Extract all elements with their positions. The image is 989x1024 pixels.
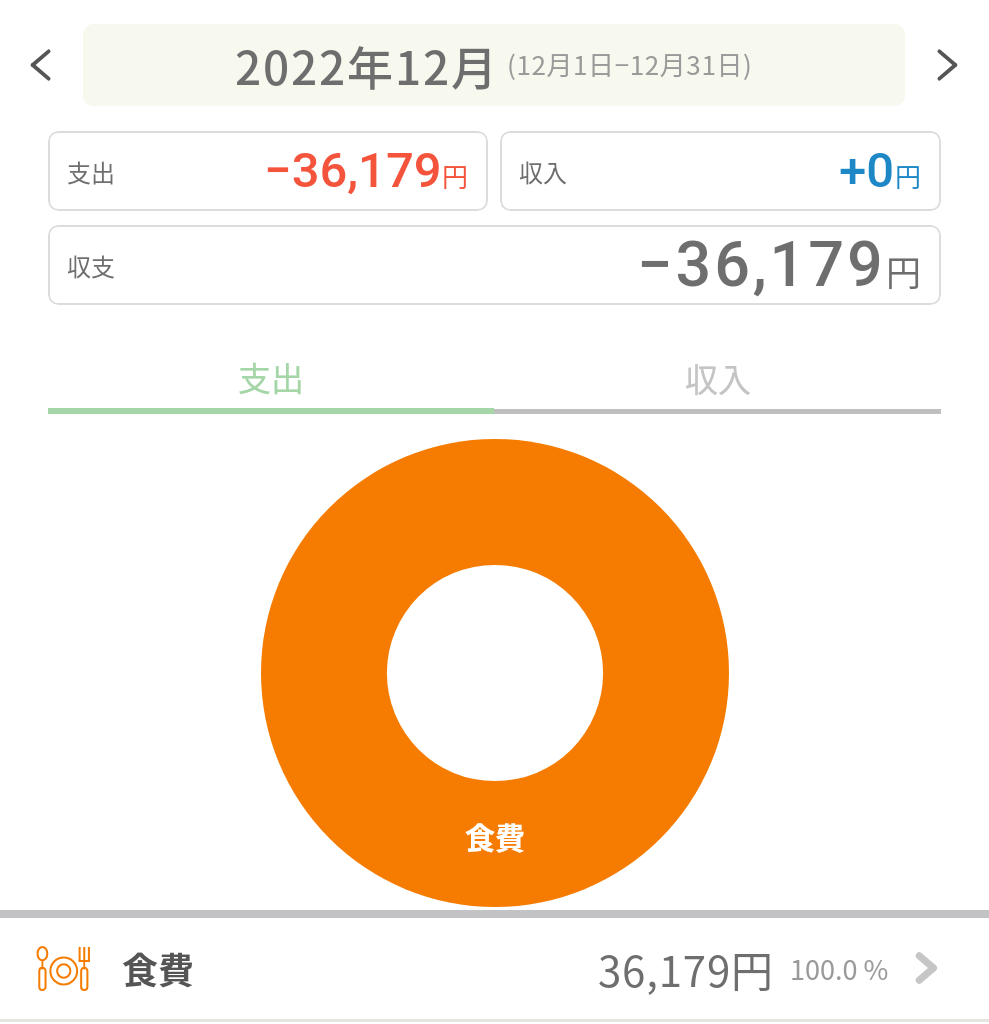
button[interactable]: 収入 [494, 346, 941, 414]
staticText: 収入 [519, 154, 567, 189]
button[interactable]: 支出 [48, 131, 488, 211]
button[interactable]: Previous month [12, 36, 70, 94]
button[interactable]: 支出 [48, 346, 494, 414]
staticText: 100.0 % [790, 949, 889, 988]
staticText: 36,179円 [598, 938, 774, 999]
staticText: 食費 [122, 942, 195, 994]
staticText: 支出 [67, 154, 115, 189]
staticText: 収入 [685, 354, 751, 402]
button[interactable]: 収支 [48, 225, 941, 305]
button[interactable]: Next month [918, 36, 976, 94]
staticText: (12月1日−12月31日) [507, 45, 753, 83]
staticText: 2022年12月 [235, 32, 499, 99]
staticText: 食費 [465, 814, 525, 857]
button[interactable]: 収入 [500, 131, 941, 211]
button[interactable]: 2022年12月 [83, 24, 905, 106]
staticText: +0 [839, 142, 895, 199]
button[interactable]: 食費 [0, 918, 989, 1018]
staticText: 支出 [238, 353, 304, 401]
staticText: 収支 [67, 248, 115, 283]
staticText: 円 [886, 245, 922, 296]
staticText: −36,179 [264, 142, 442, 199]
staticText: 円 [895, 157, 922, 195]
staticText: 円 [442, 157, 469, 195]
staticText: −36,179 [637, 228, 886, 302]
